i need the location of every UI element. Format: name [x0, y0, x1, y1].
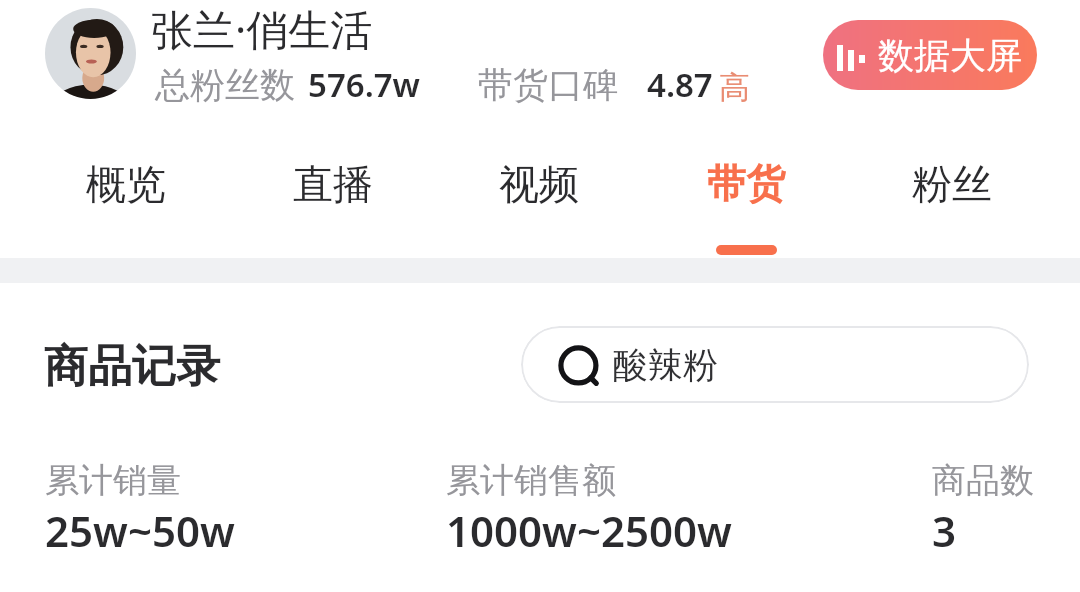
button[interactable]: 酸辣粉	[521, 326, 1029, 403]
staticText: 累计销量	[45, 459, 181, 502]
staticText: 带货	[707, 159, 785, 208]
button[interactable]: Profile avatar	[45, 8, 136, 99]
staticText: 25w~50w	[45, 502, 235, 559]
button[interactable]: 带货	[666, 0, 826, 255]
staticText: 4.87	[647, 62, 713, 107]
button[interactable]: 视频	[459, 0, 619, 256]
staticText: 概览	[86, 159, 166, 209]
staticText: 总粉丝数	[155, 63, 295, 107]
staticText: 带货口碑	[478, 63, 618, 107]
staticText: 张兰·俏生活	[151, 0, 373, 57]
staticText: 累计销售额	[446, 459, 616, 502]
button[interactable]: 粉丝	[872, 0, 1032, 256]
staticText: 酸辣粉	[613, 343, 718, 387]
staticText: 视频	[499, 159, 579, 209]
staticText: 直播	[293, 159, 373, 209]
button[interactable]: 直播	[253, 0, 413, 256]
staticText: 数据大屏	[878, 33, 1022, 78]
staticText: 3	[932, 502, 957, 559]
staticText: 商品数	[932, 459, 1034, 502]
button[interactable]: 数据大屏	[823, 20, 1037, 90]
staticText: 576.7w	[308, 62, 421, 107]
staticText: 高	[719, 68, 750, 107]
staticText: 商品记录	[44, 339, 220, 394]
button[interactable]: 概览	[46, 0, 206, 256]
staticText: 1000w~2500w	[446, 502, 732, 559]
staticText: 粉丝	[912, 159, 992, 209]
